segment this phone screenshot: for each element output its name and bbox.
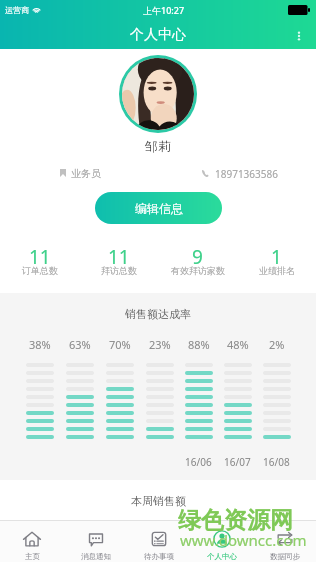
staticText: 编辑信息 [135,201,183,216]
staticText: 1 [271,244,282,270]
staticText: 11 [108,244,130,270]
staticText: 邹莉 [145,138,171,154]
button[interactable]: 11 [0,224,79,293]
staticText: 16/07 [224,455,251,469]
staticText: 16/06 [185,455,212,469]
staticText: 拜访总数 [101,265,137,276]
button[interactable]: 1 [237,224,316,293]
button[interactable]: 11 [79,224,158,293]
staticText: 23% [149,337,171,352]
button[interactable]: More options [286,23,312,49]
staticText: 70% [109,337,131,352]
staticText: 本周销售额 [131,494,186,508]
button[interactable]: 编辑信息 [95,192,222,224]
staticText: 16/08 [263,455,290,469]
button[interactable]: 消息通知 [64,521,127,562]
staticText: 9 [192,244,203,270]
staticText: 2% [269,337,285,352]
staticText: 销售额达成率 [125,307,191,321]
staticText: 业务员 [71,167,101,179]
button[interactable]: 待办事项 [127,521,190,562]
button[interactable]: 主页 [0,521,64,562]
staticText: 63% [69,337,91,352]
staticText: 数据同步 [270,552,300,561]
staticText: 消息通知 [81,552,111,561]
staticText: 48% [227,337,249,352]
staticText: 38% [29,337,51,352]
staticText: 88% [188,337,210,352]
staticText: www.downcc.com [180,530,307,550]
staticText: 主页 [25,552,40,561]
staticText: 个人中心 [130,26,186,44]
staticText: 绿色资源网 [178,506,293,535]
staticText: 18971363586 [215,167,278,179]
staticText: 业绩排名 [259,265,295,276]
button[interactable]: 个人中心 [190,521,253,562]
staticText: 11 [29,244,51,270]
staticText: 订单总数 [22,265,58,276]
staticText: 待办事项 [144,552,174,561]
button[interactable]: 数据同步 [253,521,316,562]
staticText: 上午10:27 [143,4,185,16]
button[interactable]: 9 [158,224,237,293]
staticText: 有效拜访家数 [171,265,225,276]
staticText: 个人中心 [207,552,237,561]
staticText: 运营商 [5,5,29,15]
